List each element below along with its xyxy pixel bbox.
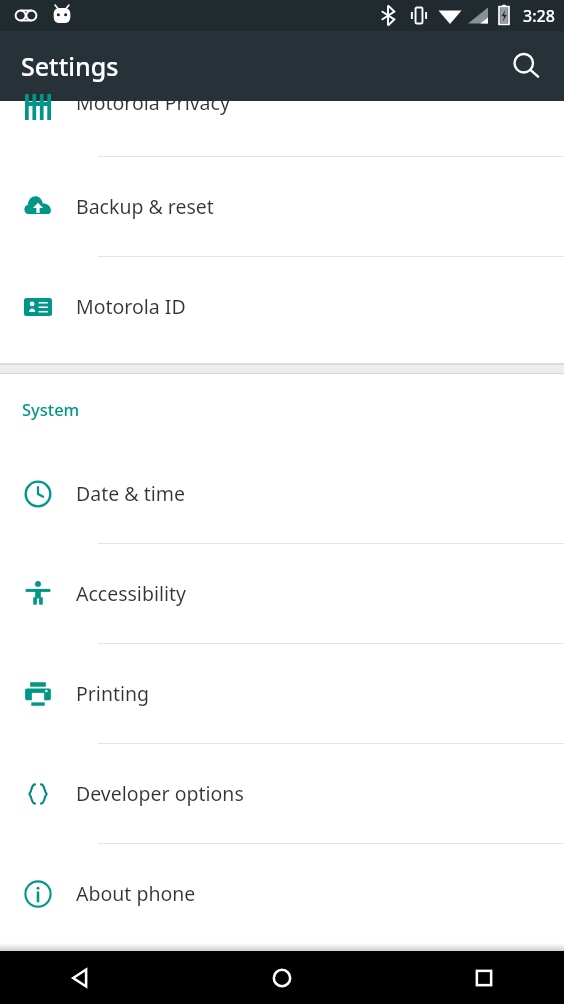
button[interactable]: Motorola Privacy bbox=[0, 101, 564, 157]
button[interactable]: Date & time bbox=[0, 444, 564, 544]
staticText: About phone bbox=[76, 880, 196, 907]
staticText: Motorola Privacy bbox=[76, 89, 230, 116]
button[interactable]: Search bbox=[500, 40, 552, 92]
staticText: Settings bbox=[21, 49, 119, 83]
button[interactable]: About phone bbox=[0, 844, 564, 943]
button[interactable]: Developer options bbox=[0, 744, 564, 844]
staticText: System bbox=[22, 398, 80, 420]
staticText: Motorola ID bbox=[76, 293, 186, 320]
button[interactable]: Recent apps bbox=[452, 951, 516, 1004]
button[interactable]: Motorola ID bbox=[0, 257, 564, 356]
button[interactable]: Backup & reset bbox=[0, 157, 564, 257]
staticText: Backup & reset bbox=[76, 193, 214, 220]
staticText: Printing bbox=[76, 680, 150, 707]
staticText: Developer options bbox=[76, 780, 244, 807]
button[interactable]: Printing bbox=[0, 644, 564, 744]
button[interactable]: Home bbox=[250, 951, 314, 1004]
staticText: Accessibility bbox=[76, 580, 186, 607]
button[interactable]: Accessibility bbox=[0, 544, 564, 644]
staticText: Date & time bbox=[76, 480, 185, 507]
staticText: 3:28 bbox=[523, 5, 555, 27]
button[interactable]: Back bbox=[48, 951, 112, 1004]
